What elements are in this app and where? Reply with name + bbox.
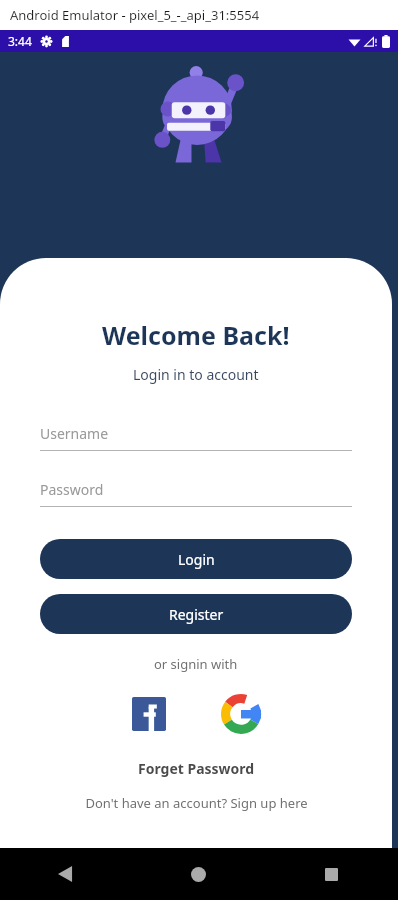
staticText: Password: [40, 480, 104, 499]
staticText: Register: [169, 605, 224, 624]
staticText: Don't have an account? Sign up here: [85, 794, 308, 812]
button[interactable]: Forget Password: [134, 755, 259, 782]
button[interactable]: Sign in with Google: [218, 691, 264, 737]
button[interactable]: Username: [40, 424, 352, 451]
button[interactable]: Home: [132, 848, 265, 900]
button[interactable]: Recents: [265, 848, 398, 900]
staticText: 3:44: [8, 33, 32, 49]
staticText: or signin with: [154, 655, 238, 673]
staticText: Android Emulator - pixel_5_-_api_31:5554: [10, 6, 260, 24]
staticText: Forget Password: [138, 759, 255, 778]
staticText: Login in to account: [133, 365, 259, 384]
button[interactable]: Back: [0, 848, 132, 900]
staticText: Username: [40, 424, 109, 443]
button[interactable]: Don't have an account? Sign up here: [81, 790, 312, 816]
button[interactable]: Register: [40, 594, 352, 634]
button[interactable]: Sign in with Facebook: [128, 693, 170, 735]
button[interactable]: Login: [40, 539, 352, 579]
staticText: Welcome Back!: [102, 318, 290, 352]
button[interactable]: Password: [40, 480, 352, 507]
staticText: Login: [178, 550, 215, 569]
